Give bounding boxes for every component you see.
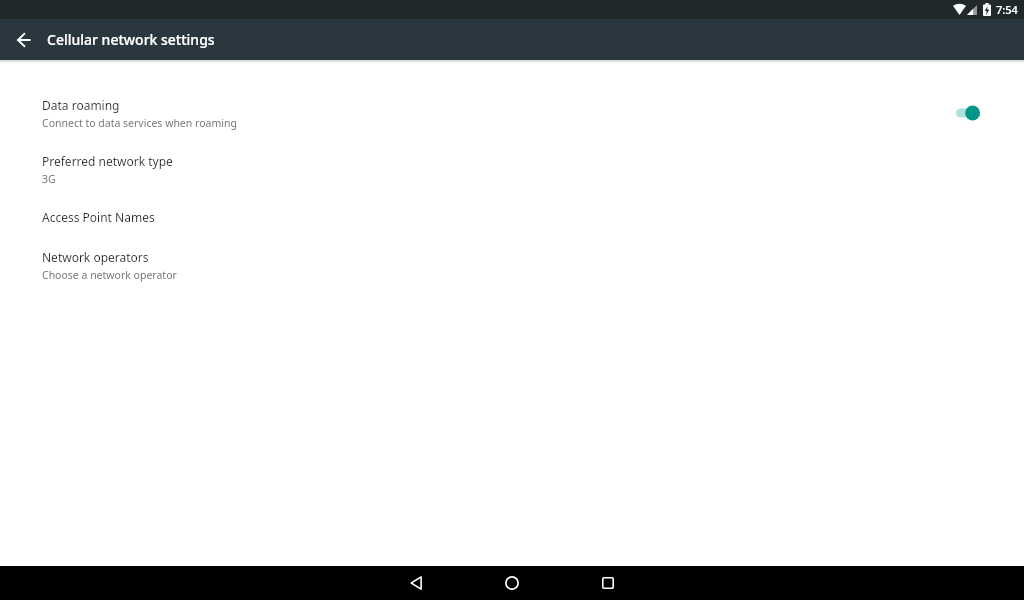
button[interactable]: Network operators [0,237,1024,293]
staticText: 7:54 [996,2,1018,17]
button[interactable]: Data roaming [0,85,1024,141]
staticText: Choose a network operator [42,268,177,282]
staticText: Network operators [42,249,149,265]
staticText: Access Point Names [42,209,155,225]
button[interactable] [480,566,544,600]
button[interactable] [0,19,47,60]
button[interactable]: Access Point Names [0,197,1024,237]
button[interactable]: Preferred network type [0,141,1024,197]
button[interactable] [384,566,448,600]
staticText: 3G [42,172,56,186]
staticText: Connect to data services when roaming [42,116,237,130]
staticText: Preferred network type [42,153,173,169]
button[interactable] [576,566,640,600]
staticText: Data roaming [42,97,120,113]
staticText: Cellular network settings [47,30,215,49]
